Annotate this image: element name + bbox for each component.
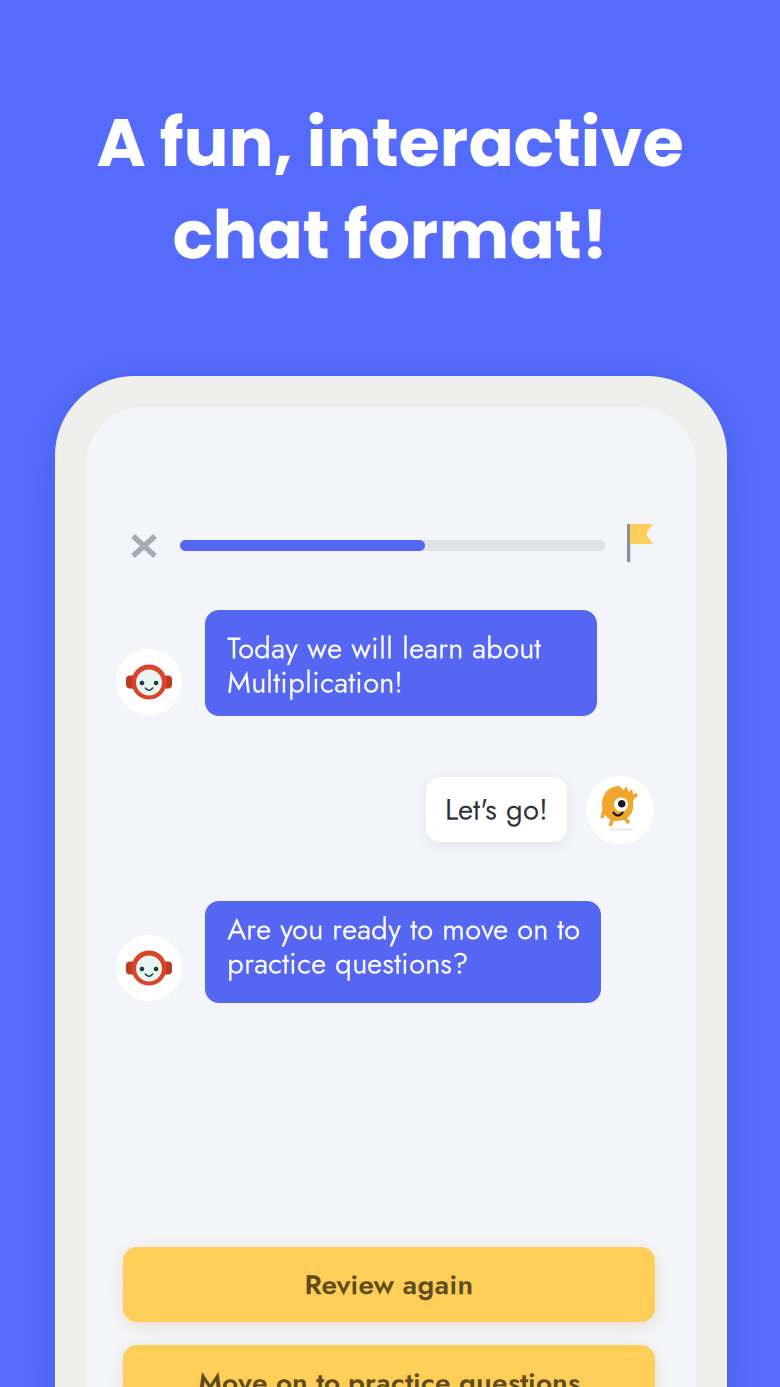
staticText: chat format! bbox=[172, 188, 607, 282]
staticText: A fun, interactive bbox=[96, 96, 683, 189]
button[interactable]: Close lesson bbox=[130, 533, 158, 559]
staticText: Multiplication! bbox=[227, 661, 403, 704]
staticText: Are you ready to move on to bbox=[227, 908, 580, 950]
button[interactable]: Move on to practice questions bbox=[123, 1345, 655, 1387]
button[interactable]: Review again bbox=[123, 1247, 655, 1322]
staticText: Move on to practice questions bbox=[198, 1362, 580, 1387]
staticText: practice questions? bbox=[227, 942, 468, 985]
staticText: Review again bbox=[304, 1264, 473, 1305]
staticText: Let's go! bbox=[445, 788, 548, 831]
staticText: Today we will learn about bbox=[227, 627, 541, 669]
button[interactable]: Lesson goal bbox=[627, 524, 653, 562]
